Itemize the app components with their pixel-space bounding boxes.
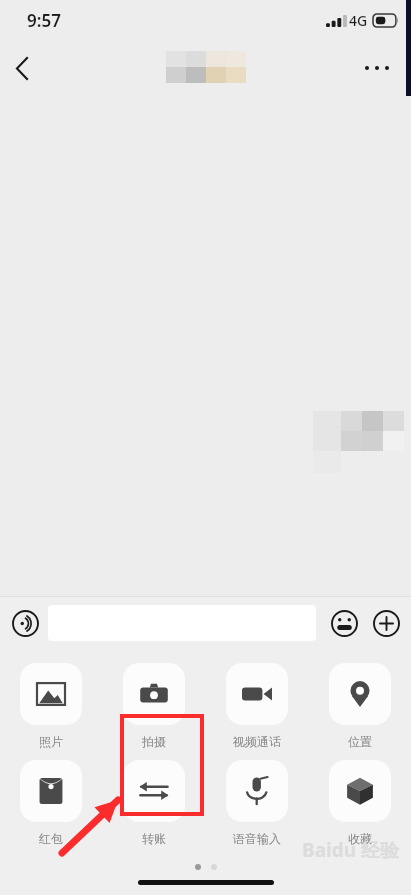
staticText: 拍摄: [142, 734, 166, 749]
button[interactable]: 拍摄: [102, 663, 205, 749]
button[interactable]: Voice message: [5, 603, 45, 643]
staticText: 照片: [39, 734, 63, 749]
button[interactable]: 收藏: [308, 760, 411, 846]
staticText: 收藏: [348, 831, 372, 846]
staticText: 4G: [349, 11, 368, 30]
button[interactable]: 红包: [0, 760, 102, 846]
staticText: Baidu 经验: [302, 837, 399, 863]
staticText: 红包: [39, 831, 63, 846]
staticText: 9:57: [27, 9, 61, 32]
button[interactable]: 视频通话: [205, 663, 308, 749]
button[interactable]: 照片: [0, 663, 102, 749]
button[interactable]: Back: [0, 46, 44, 90]
staticText: 语音输入: [233, 831, 281, 846]
button[interactable]: 语音输入: [205, 760, 308, 846]
button[interactable]: 位置: [308, 663, 411, 749]
button[interactable]: 转账: [102, 760, 205, 846]
staticText: 视频通话: [233, 734, 281, 749]
button[interactable]: More functions: [366, 603, 406, 643]
staticText: 位置: [348, 734, 372, 749]
button[interactable]: Emoji: [324, 603, 364, 643]
staticText: 转账: [142, 831, 166, 846]
button[interactable]: More options: [355, 46, 399, 90]
